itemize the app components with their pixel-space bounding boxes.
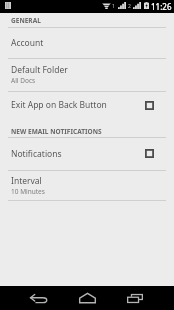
- staticText: 10 Minutes: [11, 187, 45, 196]
- staticText: GENERAL: [11, 16, 41, 25]
- staticText: Default Folder: [11, 64, 68, 76]
- staticText: Exit App on Back Button: [11, 99, 107, 111]
- staticText: 11:26: [151, 1, 172, 12]
- staticText: Interval: [11, 175, 42, 187]
- staticText: 1: [112, 3, 115, 10]
- staticText: Account: [11, 37, 44, 49]
- button[interactable]: [0, 28, 174, 59]
- button[interactable]: [0, 92, 174, 117]
- button[interactable]: [0, 171, 174, 200]
- staticText: 2: [128, 3, 131, 10]
- button[interactable]: [0, 138, 174, 170]
- button[interactable]: [0, 59, 174, 91]
- button[interactable]: Back: [12, 286, 66, 310]
- staticText: Notifications: [11, 148, 62, 160]
- staticText: All Docs: [11, 76, 36, 85]
- button[interactable]: Recent apps: [108, 286, 162, 310]
- button[interactable]: Home: [66, 286, 108, 310]
- staticText: NEW EMAIL NOTIFICATIONS: [11, 127, 102, 136]
